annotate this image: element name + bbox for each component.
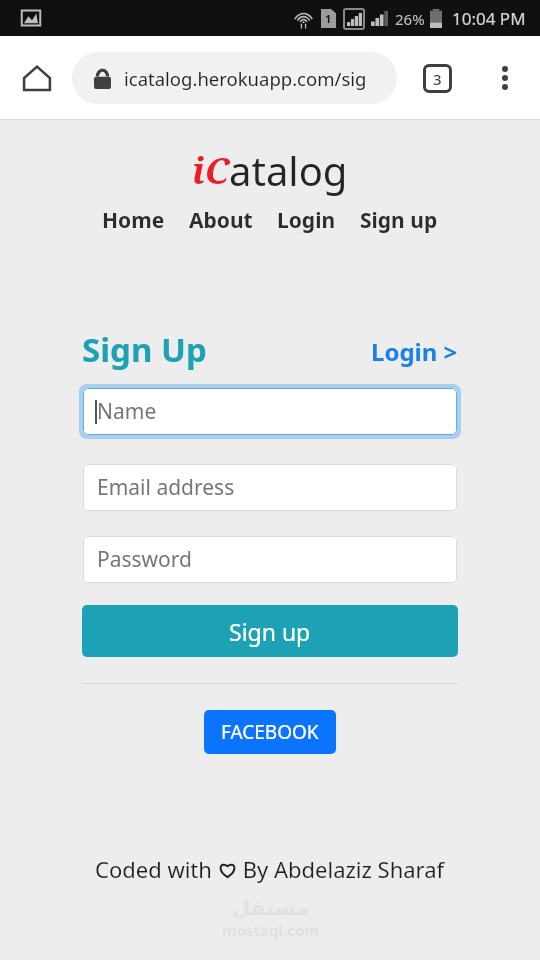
staticText: By Abdelaziz Sharaf (237, 854, 445, 884)
button[interactable]: icatalog.herokuapp.com/sig (72, 52, 397, 104)
button[interactable]: Login > (371, 335, 458, 368)
staticText: icatalog.herokuapp.com/sig (124, 66, 367, 91)
button[interactable]: Sign up (82, 605, 458, 657)
staticText: mostaql.com (222, 920, 319, 940)
staticText: 1 (325, 11, 332, 26)
button[interactable]: Sign up (360, 206, 438, 235)
staticText: Login (277, 206, 336, 235)
staticText: Home (102, 206, 165, 235)
staticText: Password (97, 545, 192, 574)
staticText: 26% (395, 9, 425, 29)
button[interactable]: Home (22, 63, 52, 93)
staticText: Login > (371, 335, 458, 368)
staticText: 10:04 PM (452, 7, 526, 30)
button[interactable]: Tabs, 3 open (423, 64, 452, 93)
staticText: Coded with (95, 854, 218, 884)
button[interactable]: About (189, 206, 253, 235)
staticText: Sign up (360, 206, 438, 235)
button[interactable]: More options (490, 63, 520, 93)
staticText: FACEBOOK (221, 719, 319, 745)
staticText: Sign Up (82, 327, 207, 372)
button[interactable]: Name (83, 388, 457, 435)
button[interactable]: Home (102, 206, 165, 235)
staticText: iC (192, 146, 229, 195)
staticText: Sign up (229, 616, 311, 647)
staticText: Name (97, 397, 157, 426)
button[interactable]: Login (277, 206, 336, 235)
button[interactable]: FACEBOOK (204, 710, 336, 754)
button[interactable]: Password (83, 536, 457, 583)
staticText: 3 (433, 69, 442, 89)
button[interactable]: Email address (83, 464, 457, 511)
staticText: About (189, 206, 253, 235)
staticText: Email address (97, 473, 235, 502)
staticText: atalog (229, 143, 348, 197)
staticText: مستقل (232, 896, 309, 920)
